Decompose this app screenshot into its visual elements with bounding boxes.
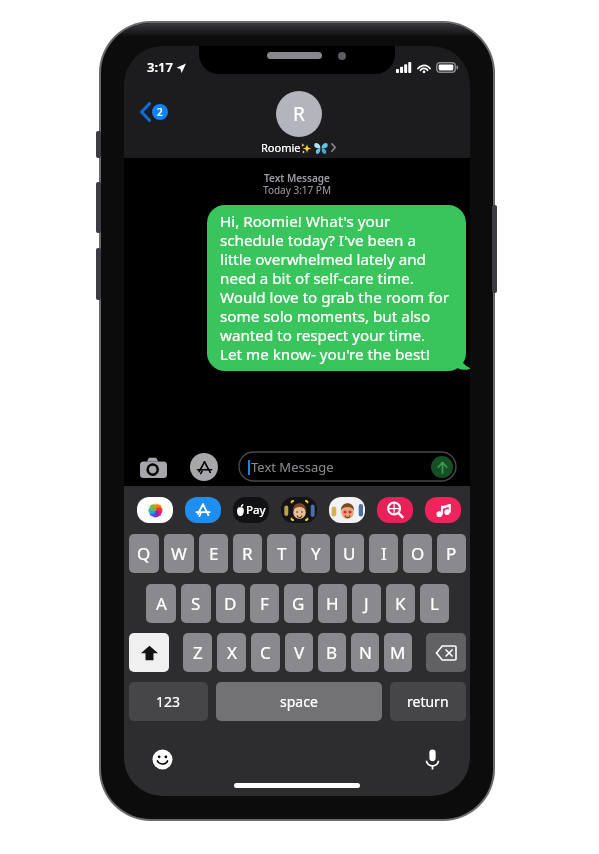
staticText: D (224, 592, 237, 615)
staticText: P (446, 542, 457, 565)
staticText: E (209, 542, 219, 565)
staticText: I (381, 542, 387, 565)
button[interactable]: Images (377, 497, 413, 523)
staticText: K (395, 592, 406, 615)
staticText: C (260, 641, 271, 664)
staticText: L (430, 592, 439, 615)
staticText: Q (137, 542, 151, 565)
button[interactable]: J (352, 584, 381, 623)
button[interactable]: Photos (137, 497, 173, 523)
staticText: 3:17 (147, 58, 173, 76)
button[interactable]: Emoji keyboard (149, 746, 175, 772)
staticText: B (326, 641, 338, 664)
button[interactable]: O (403, 534, 432, 573)
staticText: V (294, 641, 305, 664)
button[interactable]: Dictate (419, 746, 445, 772)
staticText: Hi, Roomie! What's your schedule today? … (220, 211, 449, 364)
staticText: F (260, 592, 269, 615)
button[interactable]: App Store (185, 497, 221, 523)
staticText: R (242, 542, 253, 565)
staticText: G (292, 592, 305, 615)
staticText: H (326, 592, 339, 615)
button[interactable]: H (318, 584, 347, 623)
staticText: return (407, 692, 449, 711)
button[interactable]: Music (425, 497, 461, 523)
staticText: Text Message (251, 458, 334, 476)
button[interactable]: T (267, 534, 296, 573)
staticText: U (343, 542, 356, 565)
staticText: X (227, 641, 237, 664)
button[interactable]: E (199, 534, 228, 573)
button[interactable]: Back, 2 unread messages (137, 99, 171, 125)
button[interactable]: K (386, 584, 415, 623)
button[interactable]: App Store (190, 453, 218, 481)
button[interactable]: Camera (139, 454, 168, 480)
button[interactable]: A (146, 584, 176, 623)
button[interactable]: Apple Pay (233, 497, 269, 523)
staticText: N (359, 641, 372, 664)
button[interactable]: D (216, 584, 245, 623)
staticText: W (171, 542, 187, 565)
staticText: Y (311, 542, 321, 565)
button[interactable]: X (217, 633, 246, 672)
button[interactable]: 123 (129, 682, 208, 721)
button[interactable]: Hi, Roomie! What's your schedule today? … (207, 205, 466, 371)
button[interactable]: Memoji stickers (329, 497, 365, 523)
staticText: Today 3:17 PM (124, 183, 470, 197)
button[interactable]: Send (431, 456, 453, 478)
button[interactable]: space (216, 682, 382, 721)
button[interactable]: Memoji (281, 497, 317, 523)
staticText: Roomie (261, 140, 301, 155)
button[interactable]: V (285, 633, 313, 672)
button[interactable]: Q (129, 534, 159, 573)
button[interactable]: F (250, 584, 279, 623)
staticText: M (390, 641, 406, 664)
button[interactable]: G (284, 584, 313, 623)
button[interactable]: P (437, 534, 466, 573)
button[interactable]: U (335, 534, 364, 573)
staticText: space (280, 692, 318, 711)
button[interactable]: return (390, 682, 466, 721)
staticText: Z (193, 641, 203, 664)
button[interactable]: Z (183, 633, 212, 672)
button[interactable]: B (318, 633, 346, 672)
button[interactable]: R (261, 91, 336, 155)
staticText: Text Message (124, 171, 470, 185)
staticText: S (191, 592, 201, 615)
button[interactable]: C (251, 633, 280, 672)
staticText: Pay (246, 502, 266, 518)
button[interactable]: L (420, 584, 449, 623)
button[interactable]: N (351, 633, 379, 672)
staticText: O (411, 542, 425, 565)
staticText: J (364, 592, 369, 615)
button[interactable]: Shift (129, 633, 169, 672)
staticText: 123 (156, 692, 181, 711)
button[interactable]: S (181, 584, 211, 623)
button[interactable]: Backspace (426, 633, 466, 672)
staticText: 2 (157, 105, 163, 119)
button[interactable]: I (369, 534, 398, 573)
button[interactable]: Y (301, 534, 330, 573)
button[interactable]: M (384, 633, 412, 672)
staticText: T (277, 542, 287, 565)
button[interactable]: R (233, 534, 262, 573)
button[interactable]: Text Message (239, 452, 456, 481)
button[interactable]: W (164, 534, 194, 573)
staticText: A (156, 592, 167, 615)
staticText: R (293, 101, 305, 127)
